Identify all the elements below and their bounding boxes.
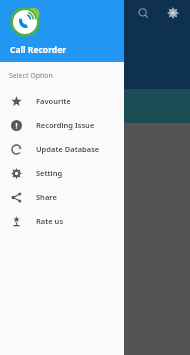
staticText: Call Recorder — [10, 44, 67, 56]
staticText: Select Option — [9, 71, 53, 81]
button[interactable]: Update Database — [0, 137, 124, 161]
staticText: Update Database — [36, 144, 100, 154]
button[interactable]: Setting — [0, 161, 124, 185]
staticText: Setting — [36, 168, 63, 178]
staticText: Rate us — [36, 216, 64, 226]
button[interactable]: Rate us — [0, 209, 124, 233]
staticText: Share — [36, 192, 57, 202]
button[interactable]: Share — [0, 185, 124, 209]
staticText: Recording Issue — [36, 120, 95, 130]
staticText: Favourite — [36, 96, 71, 106]
button[interactable]: Recording Issue — [0, 113, 124, 137]
button[interactable]: Settings — [162, 2, 184, 24]
button[interactable]: Favourite — [0, 89, 124, 113]
button[interactable]: OUTGOING — [0, 89, 190, 123]
button[interactable]: Search — [132, 2, 154, 24]
